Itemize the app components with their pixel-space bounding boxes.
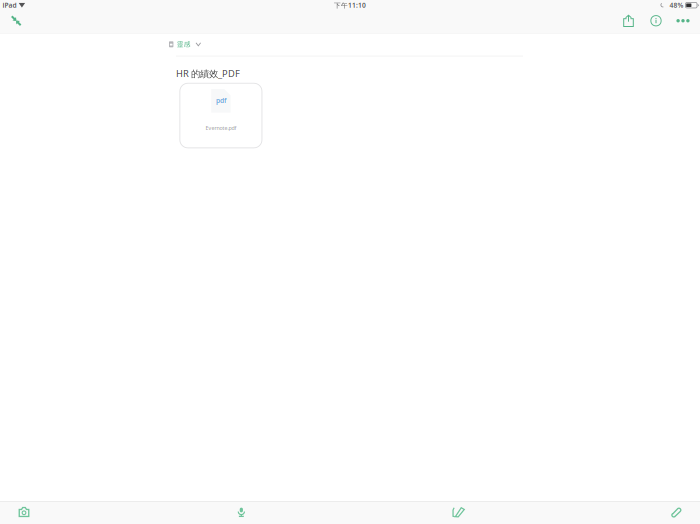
button[interactable]: Collapse sidebar (4, 10, 28, 31)
staticText: 48% (669, 1, 683, 10)
staticText: pdf (216, 96, 226, 105)
button[interactable]: Handwriting (447, 501, 471, 523)
button[interactable]: Record audio (229, 501, 253, 523)
button[interactable]: Evernote.pdf attachment (179, 83, 262, 148)
button[interactable]: Note info (645, 10, 667, 31)
staticText: HR 的績效_PDF (176, 67, 240, 79)
button[interactable]: Camera (12, 501, 36, 523)
button[interactable]: 靈感 (169, 40, 201, 48)
button[interactable]: More (672, 10, 694, 31)
button[interactable]: Share (617, 10, 639, 31)
staticText: 下午11:10 (334, 1, 366, 10)
staticText: Evernote.pdf (205, 124, 236, 131)
button[interactable]: Attach file (664, 501, 688, 523)
staticText: 靈感 (177, 40, 191, 48)
staticText: iPad (2, 1, 16, 10)
